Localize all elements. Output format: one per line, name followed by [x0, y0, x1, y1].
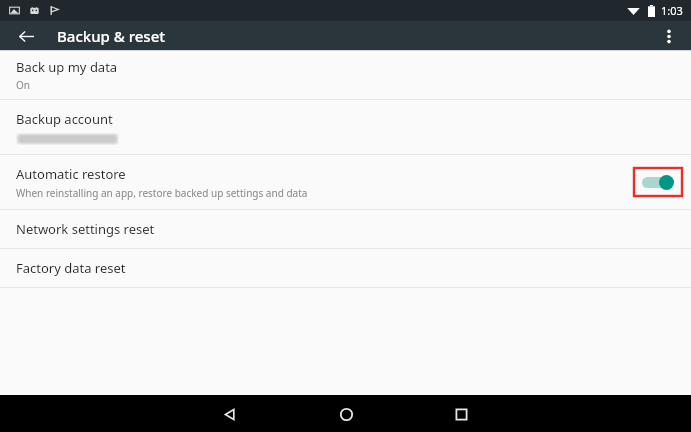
staticText: Back up my data	[16, 58, 118, 76]
button[interactable]: Network settings reset	[0, 210, 691, 248]
staticText: On	[16, 78, 30, 92]
button[interactable]: Factory data reset	[0, 249, 691, 287]
staticText: Backup account	[16, 110, 113, 128]
button[interactable]: Backup account	[0, 100, 691, 154]
button[interactable]: Automatic restore switch, on	[634, 168, 682, 196]
staticText: Backup & reset	[57, 26, 166, 46]
staticText: When reinstalling an app, restore backed…	[16, 186, 308, 200]
button[interactable]: Back	[213, 397, 247, 431]
button[interactable]: Automatic restore	[0, 155, 691, 209]
button[interactable]: More options	[656, 23, 682, 49]
staticText: 1:03	[661, 3, 683, 18]
staticText: Automatic restore	[16, 165, 126, 183]
button[interactable]: Back up my data	[0, 51, 691, 99]
staticText: Network settings reset	[16, 220, 155, 238]
button[interactable]: Home	[329, 397, 363, 431]
staticText: Factory data reset	[16, 259, 126, 277]
button[interactable]: Navigate up	[13, 23, 39, 49]
button[interactable]: Recent apps	[444, 397, 478, 431]
